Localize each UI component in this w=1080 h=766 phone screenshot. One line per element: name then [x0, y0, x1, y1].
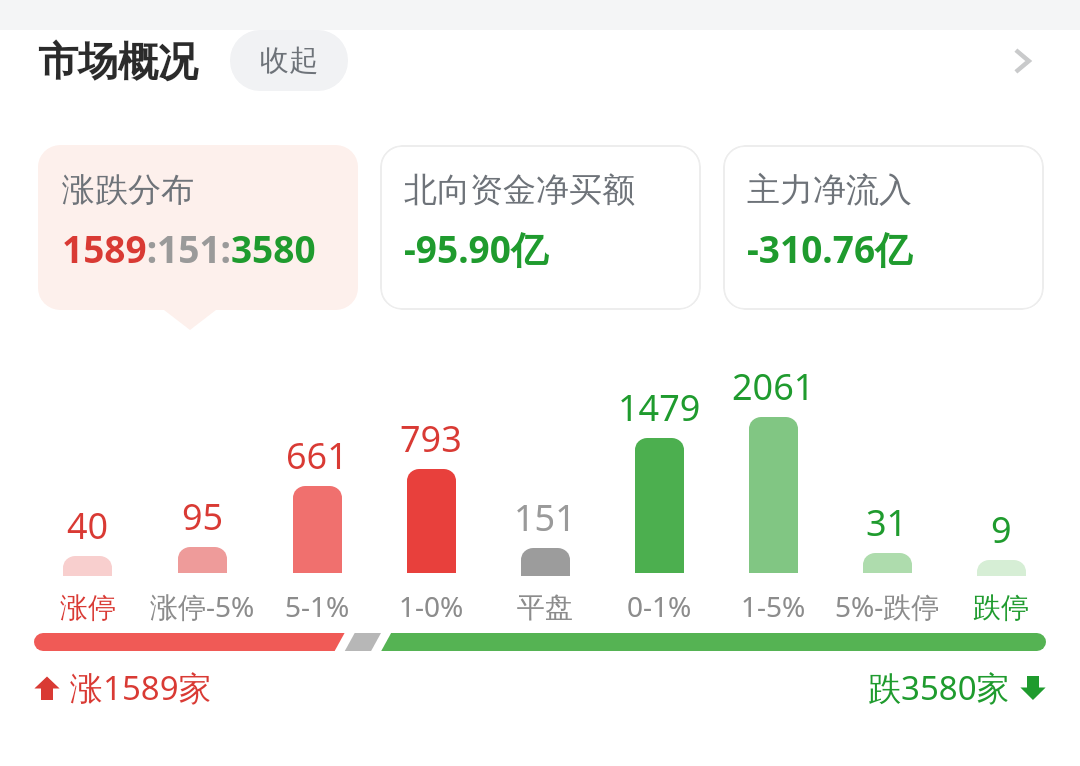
- button[interactable]: 跌3580家: [868, 665, 1048, 710]
- button[interactable]: More: [992, 31, 1052, 91]
- button[interactable]: 793: [374, 330, 488, 625]
- staticText: 9: [991, 505, 1012, 554]
- button[interactable]: 2061: [716, 330, 830, 625]
- staticText: -310.76亿: [747, 223, 913, 274]
- staticText: 1-5%: [741, 587, 806, 625]
- staticText: 31: [866, 498, 908, 547]
- button[interactable]: 31: [830, 330, 944, 625]
- staticText: 主力净流入: [747, 169, 912, 211]
- button[interactable]: 收起: [230, 30, 348, 91]
- staticText: 793: [400, 414, 462, 463]
- button[interactable]: 涨1589家: [32, 665, 212, 710]
- staticText: 2061: [732, 362, 815, 411]
- button[interactable]: 1479: [602, 330, 716, 625]
- staticText: 1589:151:3580: [62, 223, 316, 273]
- staticText: 跌3580家: [868, 665, 1010, 710]
- button[interactable]: 北向资金净买额: [380, 145, 701, 310]
- staticText: 平盘: [517, 590, 573, 625]
- staticText: 5%-跌停: [835, 587, 940, 625]
- staticText: -95.90亿: [404, 223, 548, 274]
- button[interactable]: 40: [30, 330, 145, 625]
- staticText: 涨停-5%: [150, 587, 255, 625]
- staticText: 跌停: [973, 590, 1029, 625]
- staticText: 5-1%: [285, 587, 350, 625]
- button[interactable]: 9: [944, 330, 1058, 625]
- staticText: 涨跌分布: [62, 169, 194, 211]
- button[interactable]: 主力净流入: [723, 145, 1044, 310]
- staticText: 涨停: [60, 590, 116, 625]
- staticText: 1479: [618, 383, 701, 432]
- staticText: 661: [286, 431, 348, 480]
- staticText: 151: [514, 493, 576, 542]
- staticText: 95: [182, 492, 224, 541]
- staticText: 40: [67, 501, 109, 550]
- button[interactable]: 95: [145, 330, 260, 625]
- staticText: 0-1%: [627, 587, 692, 625]
- staticText: 涨1589家: [70, 665, 212, 710]
- button[interactable]: 661: [260, 330, 374, 625]
- staticText: 收起: [260, 42, 318, 79]
- staticText: 市场概况: [38, 36, 198, 86]
- button[interactable]: 涨跌分布: [38, 145, 358, 310]
- button[interactable]: 151: [488, 330, 602, 625]
- staticText: 北向资金净买额: [404, 169, 635, 211]
- staticText: 1-0%: [399, 587, 464, 625]
